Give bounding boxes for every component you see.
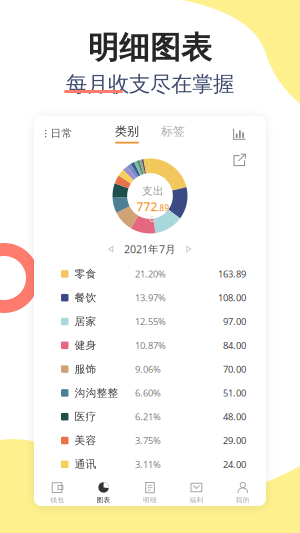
staticText: 服饰	[74, 362, 96, 376]
staticText: 6.21%	[135, 410, 161, 423]
button[interactable]: 沟沟整整	[34, 381, 266, 405]
staticText: 福利	[189, 496, 203, 504]
button[interactable]: 明细	[127, 480, 173, 506]
button[interactable]: 美容	[34, 429, 266, 452]
staticText: 97.00	[223, 315, 246, 328]
staticText: 772.89	[136, 199, 169, 214]
staticText: 24.00	[223, 458, 246, 470]
button[interactable]: 医疗	[34, 405, 266, 429]
staticText: 70.00	[223, 363, 246, 375]
staticText: 健身	[74, 339, 96, 352]
staticText: 餐饮	[74, 291, 96, 304]
staticText: 29.00	[223, 434, 246, 447]
staticText: 6.60%	[135, 387, 161, 399]
button[interactable]: 福利	[173, 480, 220, 506]
button[interactable]: Next month	[186, 246, 192, 253]
staticText: 美容	[74, 434, 96, 447]
staticText: 12.55%	[135, 315, 166, 328]
button[interactable]: 钱包	[34, 480, 80, 506]
staticText: 21.20%	[135, 268, 166, 280]
staticText: 明细	[143, 496, 157, 504]
button[interactable]: 居家	[34, 310, 266, 333]
staticText: 48.00	[223, 410, 246, 423]
staticText: 163.89	[218, 268, 246, 280]
button[interactable]: Share	[233, 153, 246, 167]
button[interactable]: 服饰	[34, 357, 266, 381]
staticText: 明细图表	[88, 29, 212, 67]
staticText: 沟沟整整	[74, 386, 118, 399]
staticText: 9.06%	[135, 363, 161, 375]
staticText: 我的	[236, 496, 250, 504]
button[interactable]: 餐饮	[34, 286, 266, 310]
staticText: 每月收支尽在掌握	[66, 71, 234, 97]
staticText: 84.00	[223, 339, 246, 351]
staticText: 类别	[115, 124, 139, 139]
staticText: 10.87%	[135, 339, 166, 351]
button[interactable]: 通讯	[34, 452, 266, 476]
staticText: 图表	[97, 496, 111, 504]
button[interactable]: 标签	[161, 124, 185, 143]
staticText: 3.11%	[135, 458, 161, 470]
button[interactable]: 日常	[34, 116, 72, 140]
staticText: 支出	[142, 184, 164, 198]
button[interactable]: Previous month	[108, 246, 114, 253]
button[interactable]: Bar chart	[233, 128, 246, 140]
button[interactable]: 类别	[115, 124, 139, 143]
staticText: 零食	[74, 267, 96, 280]
staticText: 通讯	[74, 458, 96, 471]
staticText: 钱包	[50, 496, 64, 504]
button[interactable]: 零食	[34, 262, 266, 286]
staticText: 3.75%	[135, 434, 161, 447]
staticText: 13.97%	[135, 291, 166, 304]
staticText: 108.00	[218, 291, 246, 304]
staticText: 2021年7月	[124, 242, 176, 256]
staticText: 医疗	[74, 410, 96, 423]
button[interactable]: 图表	[80, 480, 127, 506]
staticText: 标签	[161, 124, 185, 139]
staticText: 居家	[74, 315, 96, 328]
staticText: 日常	[50, 127, 72, 140]
button[interactable]: 我的	[220, 480, 266, 506]
button[interactable]: 健身	[34, 333, 266, 357]
staticText: 51.00	[223, 387, 246, 399]
